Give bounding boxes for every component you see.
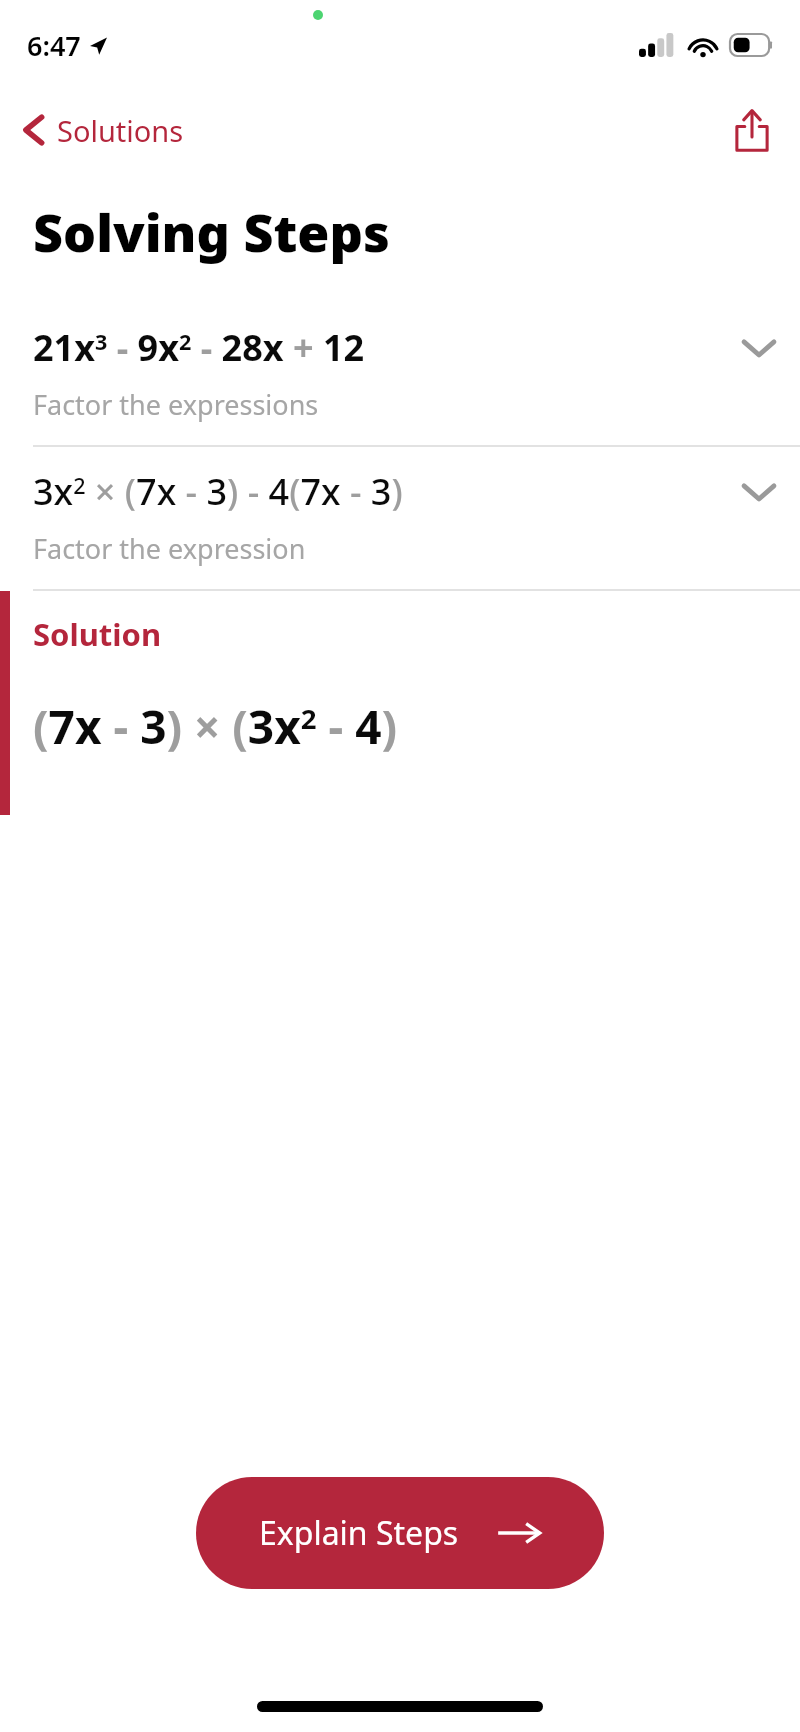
button[interactable]: Explain Steps [196, 1477, 604, 1589]
staticText: Factor the expressions [33, 386, 319, 423]
staticText: Solution [33, 613, 162, 655]
staticText: 6:47 [27, 27, 81, 64]
staticText: Factor the expression [33, 530, 306, 567]
staticText: 21x3 - 9x2 - 28x + 12 [33, 323, 365, 372]
staticText: Solving Steps [33, 196, 390, 267]
staticText: 3x2 × (7x - 3) - 4(7x - 3) [33, 467, 403, 516]
button[interactable]: 21x3 - 9x2 - 28x + 12 [0, 303, 800, 445]
staticText: Explain Steps [259, 1511, 459, 1555]
button[interactable]: Solutions [12, 102, 194, 158]
button[interactable]: Share [724, 98, 780, 162]
button[interactable]: 3x2 × (7x - 3) - 4(7x - 3) [0, 447, 800, 589]
staticText: (7x - 3) × (3x2 - 4) [33, 695, 398, 758]
staticText: Solutions [57, 111, 184, 150]
